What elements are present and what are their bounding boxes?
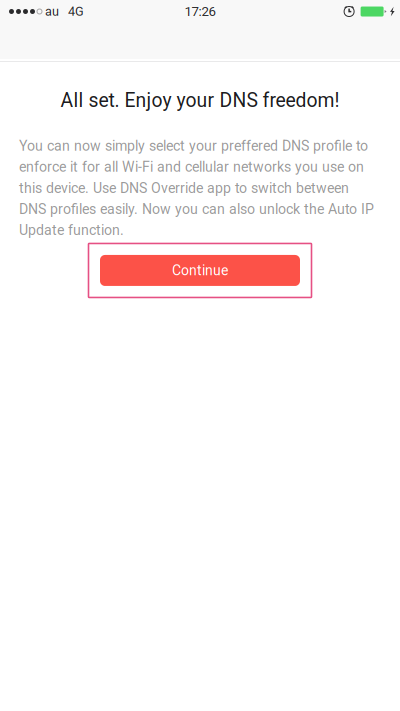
staticText: 4G [68,4,84,19]
staticText: Continue [172,262,228,279]
button[interactable]: Continue [100,255,300,286]
staticText: All set. Enjoy your DNS freedom! [60,89,339,112]
staticText: You can now simply select your preffered… [19,138,374,238]
staticText: 17:26 [184,4,215,19]
staticText: au [45,4,59,19]
